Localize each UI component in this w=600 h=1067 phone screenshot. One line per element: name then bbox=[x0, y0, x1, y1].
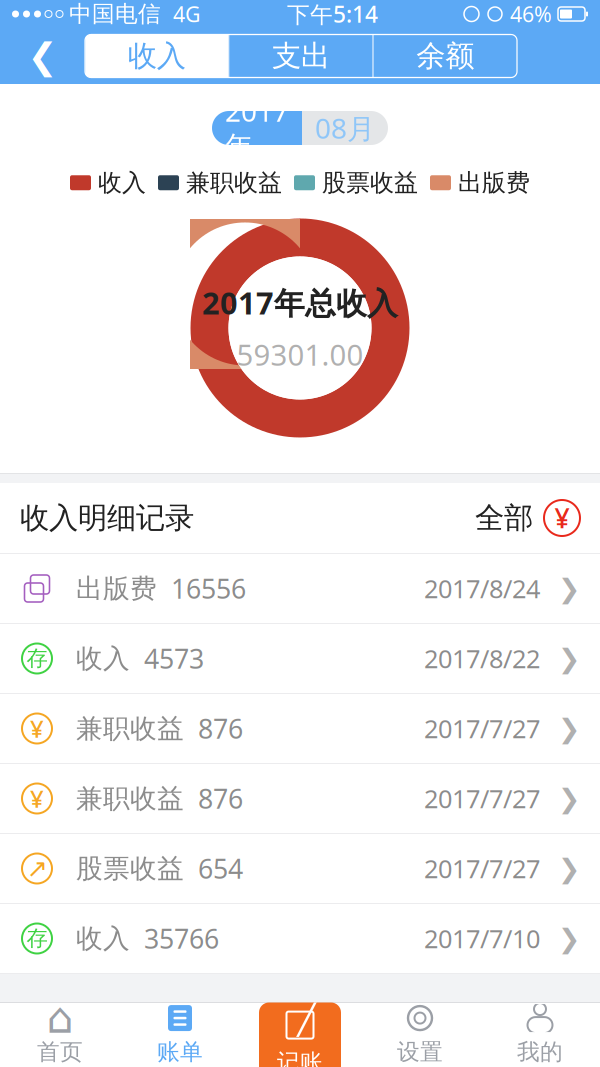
staticText: 46% bbox=[510, 0, 552, 28]
staticText: 2017年 bbox=[225, 92, 289, 164]
staticText: ❯ bbox=[558, 713, 580, 744]
staticText: ⌂ bbox=[46, 994, 73, 1042]
staticText: ❯ bbox=[558, 923, 580, 954]
staticText: 我的 bbox=[517, 1038, 563, 1066]
staticText: 2017/7/27 bbox=[424, 852, 540, 885]
staticText: ❮ bbox=[27, 36, 57, 76]
staticText: 654 bbox=[198, 851, 243, 886]
button[interactable]: 支出 bbox=[229, 34, 372, 77]
staticText: 收入 bbox=[76, 922, 130, 955]
button[interactable]: 余额 bbox=[374, 34, 517, 77]
staticText: 2017/8/24 bbox=[424, 572, 540, 605]
staticText: ╱ bbox=[297, 1000, 316, 1036]
staticText: 兼职收益 bbox=[186, 168, 282, 197]
button[interactable]: ¥ bbox=[0, 764, 600, 833]
button[interactable]: 存 bbox=[0, 904, 600, 973]
staticText: 全部 bbox=[475, 500, 533, 536]
staticText: 下午5:14 bbox=[287, 0, 378, 29]
staticText: ❯ bbox=[558, 643, 580, 674]
staticText: 兼职收益 bbox=[76, 712, 184, 745]
staticText: 4573 bbox=[144, 641, 204, 676]
staticText: 存 bbox=[26, 645, 47, 672]
staticText: 收入明细记录 bbox=[20, 500, 194, 536]
button[interactable]: ⌂ bbox=[0, 1003, 120, 1067]
staticText: 存 bbox=[26, 925, 47, 952]
staticText: ❯ bbox=[558, 573, 580, 604]
staticText: ❯ bbox=[558, 853, 580, 884]
button[interactable]: 我的 bbox=[480, 1003, 600, 1067]
staticText: ¥ bbox=[30, 713, 44, 744]
staticText: ↗ bbox=[26, 854, 47, 883]
staticText: 首页 bbox=[37, 1038, 83, 1066]
staticText: 余额 bbox=[416, 38, 474, 74]
staticText: 中国电信 bbox=[69, 0, 161, 28]
staticText: 4G bbox=[173, 0, 201, 28]
staticText: 收入 bbox=[76, 642, 130, 675]
staticText: 出版费 bbox=[458, 168, 530, 197]
button[interactable]: 全部 bbox=[475, 490, 600, 546]
staticText: 2017/8/22 bbox=[424, 642, 540, 675]
staticText: ❯ bbox=[558, 783, 580, 814]
staticText: 支出 bbox=[272, 38, 330, 74]
button[interactable]: 设置 bbox=[360, 1003, 480, 1067]
staticText: 2017年总收入 bbox=[202, 282, 398, 323]
button[interactable]: 08月 bbox=[302, 111, 388, 145]
button[interactable]: 存 bbox=[0, 624, 600, 693]
staticText: 账单 bbox=[157, 1038, 203, 1066]
button[interactable]: 返回 bbox=[0, 28, 85, 84]
staticText: 收入 bbox=[98, 168, 146, 197]
staticText: 2017/7/10 bbox=[424, 922, 540, 955]
staticText: 收入 bbox=[128, 38, 186, 74]
staticText: 2017/7/27 bbox=[424, 712, 540, 745]
button[interactable]: ¥ bbox=[0, 694, 600, 763]
button[interactable]: 收入 bbox=[85, 34, 228, 77]
staticText: 记账 bbox=[277, 1048, 323, 1067]
staticText: 35766 bbox=[144, 921, 219, 956]
staticText: ¥ bbox=[554, 500, 569, 536]
staticText: 876 bbox=[198, 781, 243, 816]
button[interactable]: 出版费 bbox=[0, 554, 600, 623]
staticText: 08月 bbox=[315, 109, 375, 147]
button[interactable]: 账单 bbox=[120, 1003, 240, 1067]
staticText: 股票收益 bbox=[322, 168, 418, 197]
staticText: 出版费 bbox=[76, 572, 157, 605]
staticText: 2017/7/27 bbox=[424, 782, 540, 815]
staticText: ¥ bbox=[30, 783, 44, 814]
button[interactable]: 2017年 bbox=[212, 111, 302, 145]
staticText: 设置 bbox=[397, 1038, 443, 1066]
staticText: 股票收益 bbox=[76, 852, 184, 885]
button[interactable]: ╱ bbox=[259, 1002, 341, 1067]
staticText: 876 bbox=[198, 711, 243, 746]
button[interactable]: ↗ bbox=[0, 834, 600, 903]
staticText: 16556 bbox=[171, 571, 246, 606]
staticText: 兼职收益 bbox=[76, 782, 184, 815]
staticText: 59301.00 bbox=[236, 335, 363, 374]
